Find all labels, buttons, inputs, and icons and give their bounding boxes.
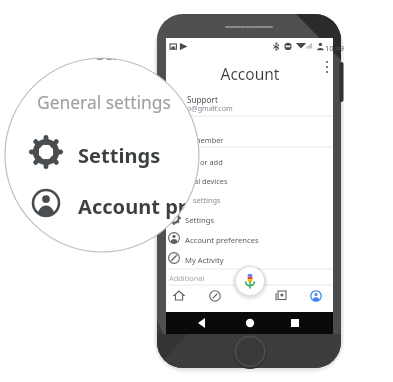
button[interactable]: Explore	[210, 286, 250, 310]
button[interactable]: Home	[168, 286, 208, 310]
button[interactable]: Account	[300, 286, 340, 310]
button[interactable]: Voice search	[234, 264, 268, 298]
button[interactable]: Settings	[37, 131, 187, 173]
button[interactable]: Collections	[265, 286, 305, 310]
button[interactable]: More options	[320, 56, 340, 80]
button[interactable]: Account preferences	[37, 182, 182, 224]
